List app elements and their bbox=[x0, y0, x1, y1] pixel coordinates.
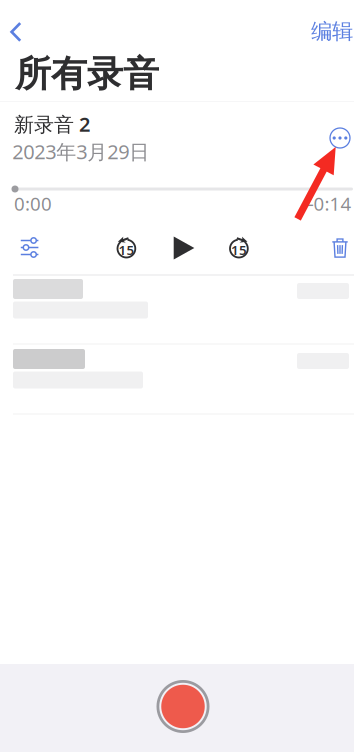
button[interactable]: Playback settings bbox=[7, 225, 52, 270]
staticText: 编辑 bbox=[311, 18, 353, 45]
button[interactable]: Record bbox=[152, 675, 214, 737]
button[interactable]: Skip forward 15 seconds bbox=[218, 227, 259, 269]
staticText: –0:14 bbox=[304, 191, 351, 216]
button[interactable]: Back bbox=[2, 12, 38, 51]
button[interactable]: Delete bbox=[320, 225, 354, 270]
button[interactable]: More bbox=[323, 121, 354, 155]
button[interactable]: Play bbox=[163, 226, 205, 270]
staticText: 0:00 bbox=[14, 191, 52, 216]
staticText: 新录音 2 bbox=[14, 111, 90, 137]
button[interactable]: Skip back 15 seconds bbox=[106, 227, 147, 269]
staticText: 所有录音 bbox=[15, 52, 159, 96]
staticText: 2023年3月29日 bbox=[12, 138, 149, 165]
staticText: 15 bbox=[231, 241, 247, 259]
staticText: 15 bbox=[118, 241, 134, 259]
button[interactable]: 编辑 bbox=[297, 9, 354, 54]
